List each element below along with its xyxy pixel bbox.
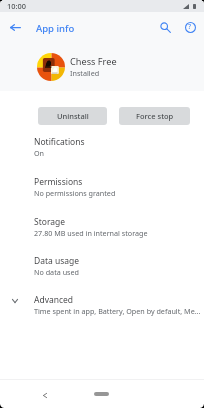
button[interactable]: Search bbox=[153, 15, 177, 39]
staticText: Storage bbox=[34, 216, 66, 228]
button[interactable]: Home bbox=[94, 392, 109, 396]
button[interactable]: Advanced bbox=[0, 290, 204, 330]
button[interactable]: Uninstall bbox=[38, 107, 107, 125]
button[interactable]: Force stop bbox=[119, 107, 190, 125]
staticText: Notifications bbox=[34, 136, 85, 148]
button[interactable]: Notifications bbox=[0, 132, 204, 172]
staticText: Data usage bbox=[34, 255, 80, 267]
staticText: 10:00 bbox=[7, 1, 26, 11]
button[interactable]: Permissions bbox=[0, 172, 204, 212]
staticText: Chess Free bbox=[70, 55, 117, 68]
staticText: Advanced bbox=[34, 294, 74, 306]
staticText: Force stop bbox=[136, 111, 174, 121]
staticText: Uninstall bbox=[57, 111, 89, 121]
staticText: Installed bbox=[70, 68, 100, 78]
staticText: Permissions bbox=[34, 176, 83, 188]
staticText: Time spent in app, Battery, Open by defa… bbox=[34, 306, 201, 316]
staticText: 27.80 MB used in internal storage bbox=[34, 228, 148, 238]
staticText: On bbox=[34, 148, 45, 158]
button[interactable]: Data usage bbox=[0, 251, 204, 291]
button[interactable]: Navigate up bbox=[3, 15, 27, 39]
button[interactable]: Back bbox=[36, 387, 53, 404]
staticText: No data used bbox=[34, 267, 79, 277]
staticText: ? bbox=[188, 22, 192, 32]
button[interactable]: Help bbox=[178, 15, 202, 39]
staticText: No permissions granted bbox=[34, 188, 116, 198]
button[interactable]: Storage bbox=[0, 212, 204, 252]
staticText: App info bbox=[36, 22, 75, 35]
